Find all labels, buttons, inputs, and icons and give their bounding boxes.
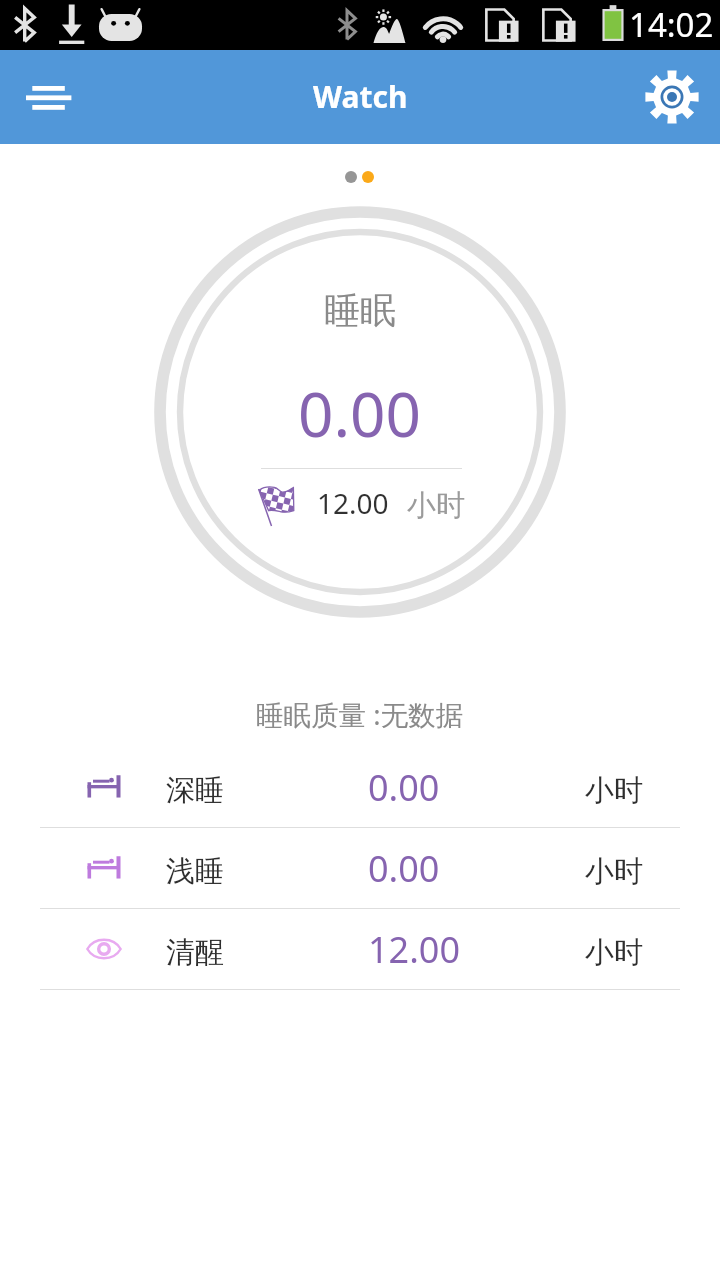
staticText: 0.00: [298, 371, 422, 455]
staticText: Watch: [313, 76, 408, 117]
button[interactable]: Settings: [624, 50, 720, 144]
staticText: 小时: [585, 772, 643, 809]
button[interactable]: 清醒: [0, 909, 720, 990]
staticText: 深睡: [166, 772, 224, 809]
staticText: 0.00: [368, 763, 440, 812]
staticText: 睡眠质量 :无数据: [256, 696, 464, 734]
button[interactable]: 浅睡: [0, 828, 720, 909]
button[interactable]: 深睡: [0, 747, 720, 828]
staticText: 小时: [585, 853, 643, 890]
staticText: 0.00: [368, 844, 440, 893]
staticText: 清醒: [166, 934, 224, 971]
staticText: 小时: [585, 934, 643, 971]
staticText: 12.00: [368, 925, 461, 974]
staticText: 浅睡: [166, 853, 224, 890]
button[interactable]: Open navigation menu: [0, 50, 96, 144]
button[interactable]: Page 1: [345, 171, 357, 183]
staticText: 小时: [407, 487, 465, 524]
staticText: 12.00: [317, 484, 389, 522]
staticText: 睡眠: [324, 288, 396, 333]
button[interactable]: Page 2, selected: [362, 171, 374, 183]
staticText: 14:02: [629, 2, 714, 47]
